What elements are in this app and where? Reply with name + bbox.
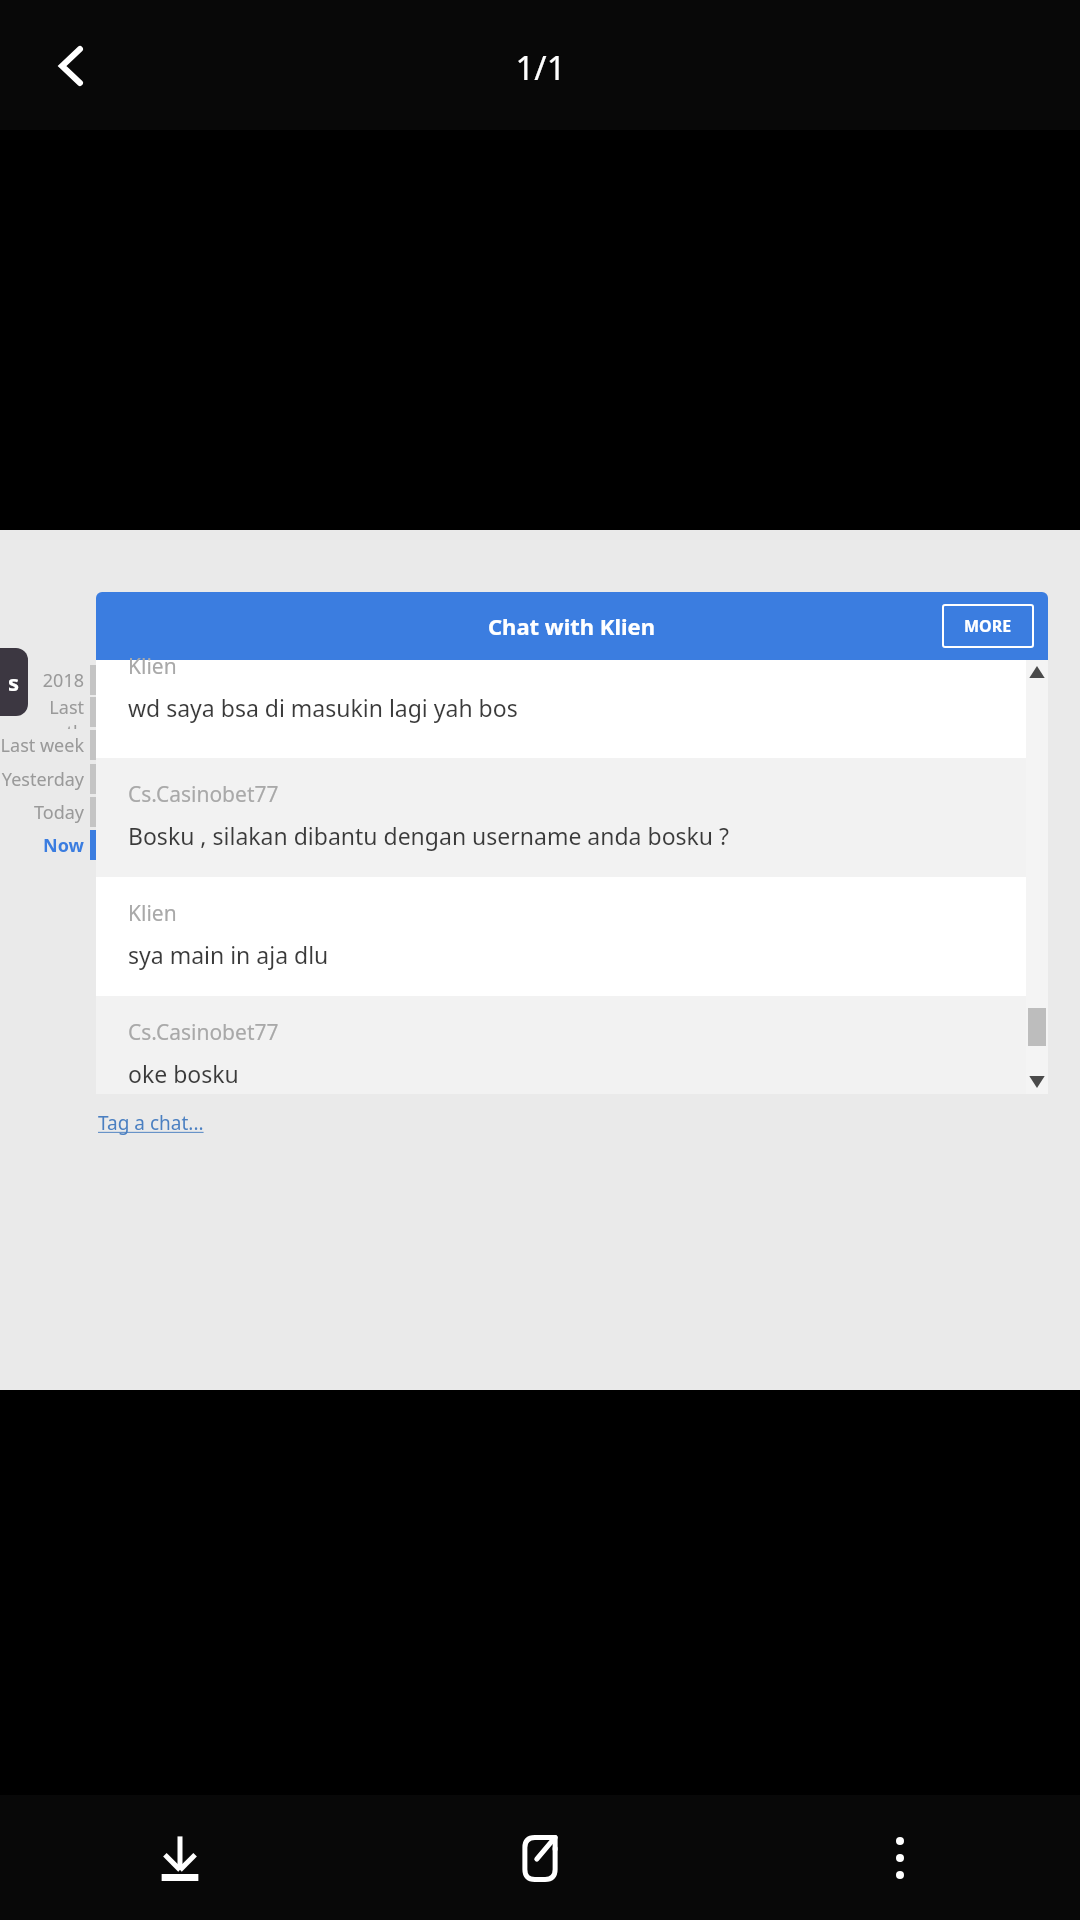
button[interactable]: Share bbox=[360, 1795, 720, 1920]
button[interactable]: Back bbox=[20, 14, 124, 118]
staticText: Cs.Casinobet77 bbox=[128, 1018, 279, 1047]
button[interactable]: Today bbox=[0, 795, 88, 829]
staticText: MORE bbox=[964, 615, 1012, 637]
staticText: 2018 bbox=[42, 668, 84, 693]
staticText: Tag a chat... bbox=[98, 1110, 204, 1136]
staticText: wd saya bsa di masukin lagi yah bos bbox=[128, 692, 518, 723]
staticText: Yesterday bbox=[1, 767, 84, 792]
button[interactable]: More options bbox=[720, 1795, 1080, 1920]
staticText: Today bbox=[34, 800, 84, 825]
staticText: Klien bbox=[128, 652, 177, 681]
staticText: Last month bbox=[0, 695, 84, 729]
staticText: oke bosku bbox=[128, 1058, 239, 1089]
button[interactable]: Last month bbox=[0, 695, 88, 729]
button[interactable]: Tag a chat... bbox=[96, 1108, 206, 1138]
button[interactable]: Yesterday bbox=[0, 762, 88, 796]
button[interactable]: Cs.Casinobet77 bbox=[96, 996, 1048, 1094]
staticText: Now bbox=[43, 833, 84, 858]
staticText: sya main in aja dlu bbox=[128, 939, 329, 970]
button[interactable]: Klien bbox=[96, 877, 1048, 996]
staticText: Bosku , silakan dibantu dengan username … bbox=[128, 820, 730, 851]
button[interactable]: Now bbox=[0, 828, 88, 862]
staticText: 1/1 bbox=[515, 45, 566, 90]
button[interactable]: Cs.Casinobet77 bbox=[96, 758, 1048, 877]
button[interactable]: Last week bbox=[0, 728, 88, 762]
button[interactable]: MORE bbox=[942, 604, 1034, 648]
button[interactable]: Klien bbox=[96, 660, 1048, 758]
staticText: Klien bbox=[128, 899, 177, 928]
staticText: Last week bbox=[0, 733, 84, 758]
button[interactable]: Download bbox=[0, 1795, 360, 1920]
staticText: Cs.Casinobet77 bbox=[128, 780, 279, 809]
staticText: s bbox=[8, 667, 20, 697]
button[interactable]: 2018 bbox=[0, 663, 88, 697]
staticText: Chat with Klien bbox=[488, 611, 656, 641]
